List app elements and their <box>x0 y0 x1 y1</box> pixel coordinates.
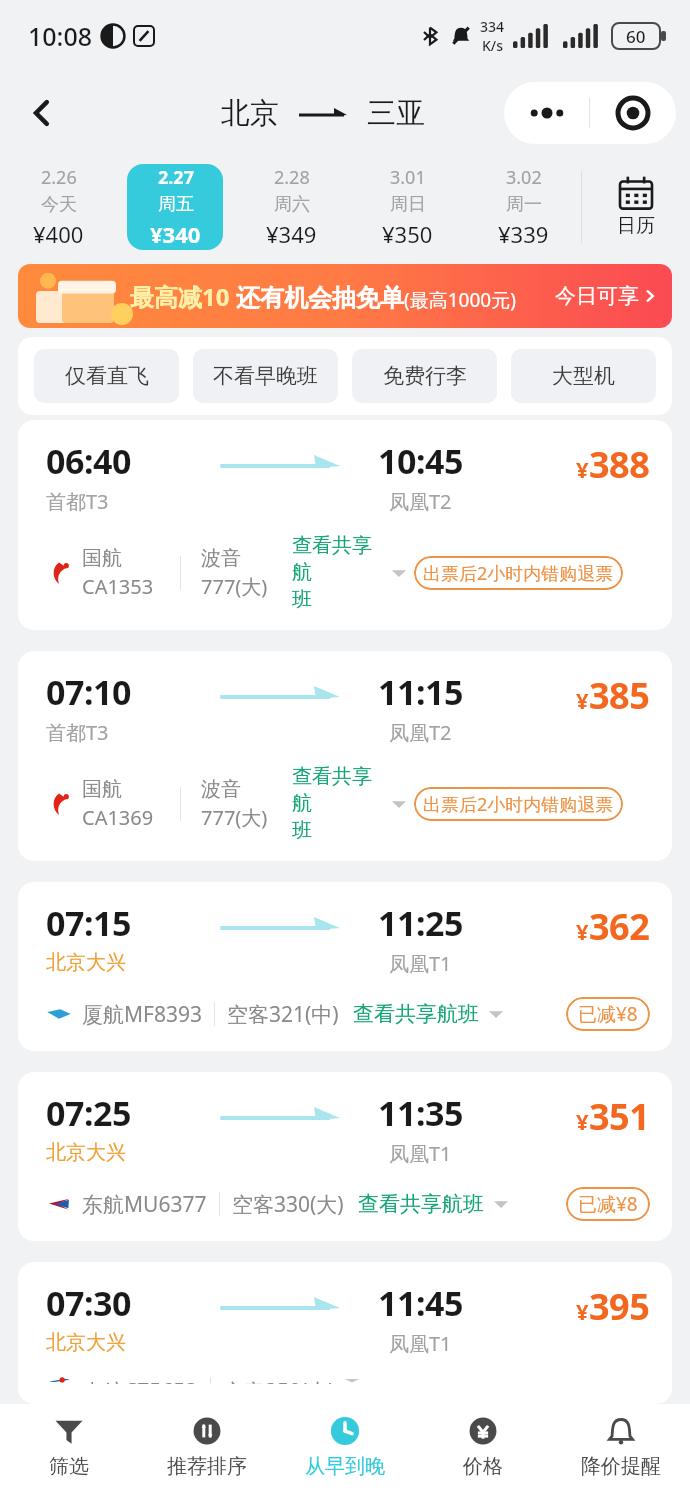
staticText: 11:35 <box>378 1090 463 1136</box>
staticText: 空客321(中) <box>227 1000 339 1029</box>
staticText: 已减¥8 <box>578 1191 638 1217</box>
staticText: 60 <box>626 25 646 48</box>
staticText: 不看早晚班 <box>213 363 318 389</box>
staticText: 北京 <box>221 95 279 132</box>
staticText: 北京大兴 <box>46 950 126 975</box>
button[interactable]: 2.28 <box>243 164 339 250</box>
staticText: ¥ <box>576 1296 589 1326</box>
button[interactable]: 06:40 <box>18 420 672 630</box>
staticText: 首都T3 <box>46 488 109 515</box>
staticText: 北京大兴 <box>46 1330 126 1355</box>
staticText: 凤凰T2 <box>389 488 452 515</box>
staticText: 筛选 <box>49 1454 89 1479</box>
staticText: 395 <box>589 1282 650 1331</box>
staticText: 免费行李 <box>383 363 467 389</box>
staticText: ¥339 <box>498 219 549 249</box>
button[interactable]: 从早到晚 <box>276 1404 414 1490</box>
staticText: 凤凰T1 <box>389 1140 452 1167</box>
button[interactable]: 日历 <box>582 154 690 260</box>
staticText: 07:15 <box>46 900 131 946</box>
button[interactable]: 大型机 <box>511 349 656 403</box>
staticText: CA1353 <box>82 573 154 600</box>
button[interactable]: 2.27 <box>127 164 223 250</box>
staticText: 385 <box>589 671 650 720</box>
staticText: CA1369 <box>82 804 154 831</box>
staticText: 国航 <box>82 546 122 571</box>
staticText: 2.28 <box>274 165 310 190</box>
button[interactable]: 免费行李 <box>352 349 497 403</box>
staticText: 06:40 <box>46 438 131 484</box>
button[interactable]: 不看早晚班 <box>193 349 338 403</box>
staticText: (最高1000元) <box>404 287 516 313</box>
staticText: 10:45 <box>378 438 463 484</box>
staticText: 首都T3 <box>46 719 109 746</box>
staticText: 334 <box>480 17 505 36</box>
staticText: 查看共享航班 <box>353 1001 479 1027</box>
button[interactable]: Target <box>590 82 676 144</box>
staticText: 周日 <box>390 193 426 216</box>
staticText: 日历 <box>617 214 655 238</box>
staticText: 查看共享航班 <box>358 1191 484 1217</box>
staticText: 已减¥8 <box>578 1001 638 1027</box>
staticText: 厦航MF8393 <box>82 1000 202 1029</box>
staticText: 大型机 <box>552 363 615 389</box>
staticText: ¥ <box>576 685 589 715</box>
staticText: 777(大) <box>201 804 268 831</box>
staticText: 从早到晚 <box>305 1454 385 1479</box>
staticText: ¥ <box>576 916 589 946</box>
button[interactable]: 最高减10 <box>18 264 672 328</box>
button[interactable]: More <box>504 82 589 144</box>
staticText: 降价提醒 <box>581 1454 661 1479</box>
staticText: 今日可享 <box>555 283 639 309</box>
button[interactable]: 3.01 <box>359 164 455 250</box>
staticText: 北京大兴 <box>46 1140 126 1165</box>
button[interactable]: 3.02 <box>475 164 571 250</box>
staticText: 07:30 <box>46 1280 131 1326</box>
staticText: 凤凰T1 <box>389 950 452 977</box>
staticText: 东航MU6377 <box>82 1190 207 1219</box>
staticText: 388 <box>589 440 650 489</box>
staticText: 周六 <box>274 193 310 216</box>
button[interactable]: 07:10 <box>18 651 672 861</box>
staticText: 凤凰T1 <box>389 1330 452 1357</box>
staticText: ¥400 <box>33 219 84 249</box>
staticText: 国航 <box>82 777 122 802</box>
staticText: 还有机会抽免单 <box>236 283 404 313</box>
staticText: K/s <box>482 36 504 55</box>
staticText: 南航CZ5653 <box>82 1377 198 1384</box>
staticText: 仅看直飞 <box>65 363 149 389</box>
staticText: 362 <box>589 902 650 951</box>
staticText: ¥350 <box>382 219 433 249</box>
staticText: 2.27 <box>158 165 194 190</box>
staticText: ¥349 <box>266 219 317 249</box>
staticText: 10:08 <box>28 19 93 53</box>
staticText: 周一 <box>506 193 542 216</box>
button[interactable]: 价格 <box>414 1404 552 1490</box>
staticText: ¥340 <box>150 219 201 249</box>
staticText: 班 <box>292 818 312 843</box>
button[interactable]: 筛选 <box>0 1404 138 1490</box>
staticText: 2.26 <box>41 165 77 190</box>
staticText: 11:45 <box>378 1280 463 1326</box>
button[interactable]: 2.26 <box>10 164 107 250</box>
staticText: 今天 <box>41 193 77 216</box>
button[interactable]: 推荐排序 <box>138 1404 276 1490</box>
staticText: 凤凰T2 <box>389 719 452 746</box>
staticText: ¥ <box>576 1106 589 1136</box>
button[interactable]: 07:25 <box>18 1072 672 1241</box>
staticText: 波音 <box>201 777 241 802</box>
staticText: 11:15 <box>378 669 463 715</box>
button[interactable]: 07:30 <box>18 1262 672 1404</box>
button[interactable]: 降价提醒 <box>552 1404 690 1490</box>
staticText: 351 <box>589 1092 650 1141</box>
staticText: 3.01 <box>390 165 426 190</box>
staticText: 出票后2小时内错购退票 <box>423 561 614 586</box>
staticText: 777(大) <box>201 573 268 600</box>
button[interactable]: Back <box>14 85 70 141</box>
staticText: 查看共享航 <box>292 764 384 816</box>
staticText: 空客330(大) <box>232 1190 344 1219</box>
staticText: 班 <box>292 587 312 612</box>
staticText: 查看共享航 <box>292 533 384 585</box>
button[interactable]: 07:15 <box>18 882 672 1051</box>
button[interactable]: 仅看直飞 <box>34 349 179 403</box>
